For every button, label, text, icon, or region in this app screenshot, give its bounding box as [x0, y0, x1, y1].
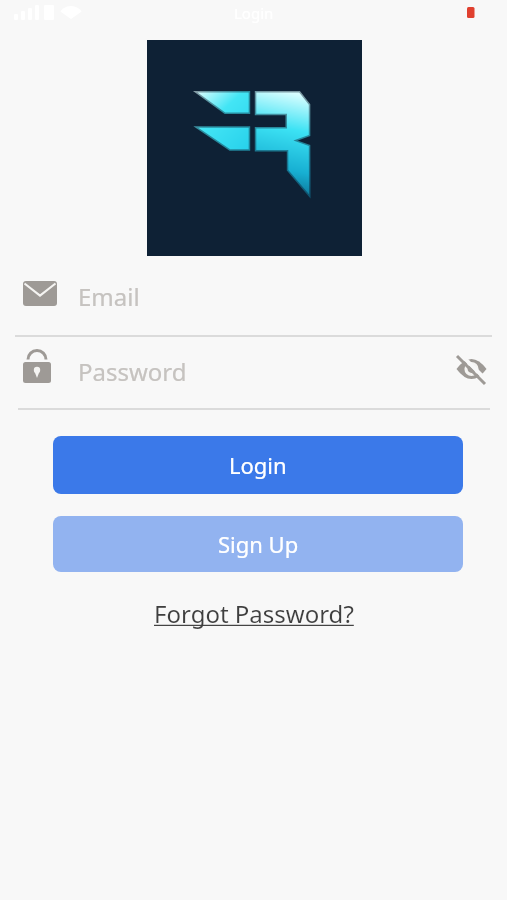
- button[interactable]: Login: [53, 436, 463, 494]
- button[interactable]: [443, 344, 499, 390]
- button[interactable]: Password: [0, 344, 507, 406]
- staticText: Login: [229, 450, 287, 480]
- staticText: Sign Up: [218, 529, 299, 559]
- button[interactable]: Email: [0, 270, 507, 334]
- staticText: Password: [78, 355, 187, 388]
- button[interactable]: Sign Up: [53, 516, 463, 572]
- staticText: Forgot Password?: [154, 597, 354, 630]
- staticText: Email: [78, 280, 140, 313]
- button[interactable]: Forgot Password?: [0, 592, 507, 634]
